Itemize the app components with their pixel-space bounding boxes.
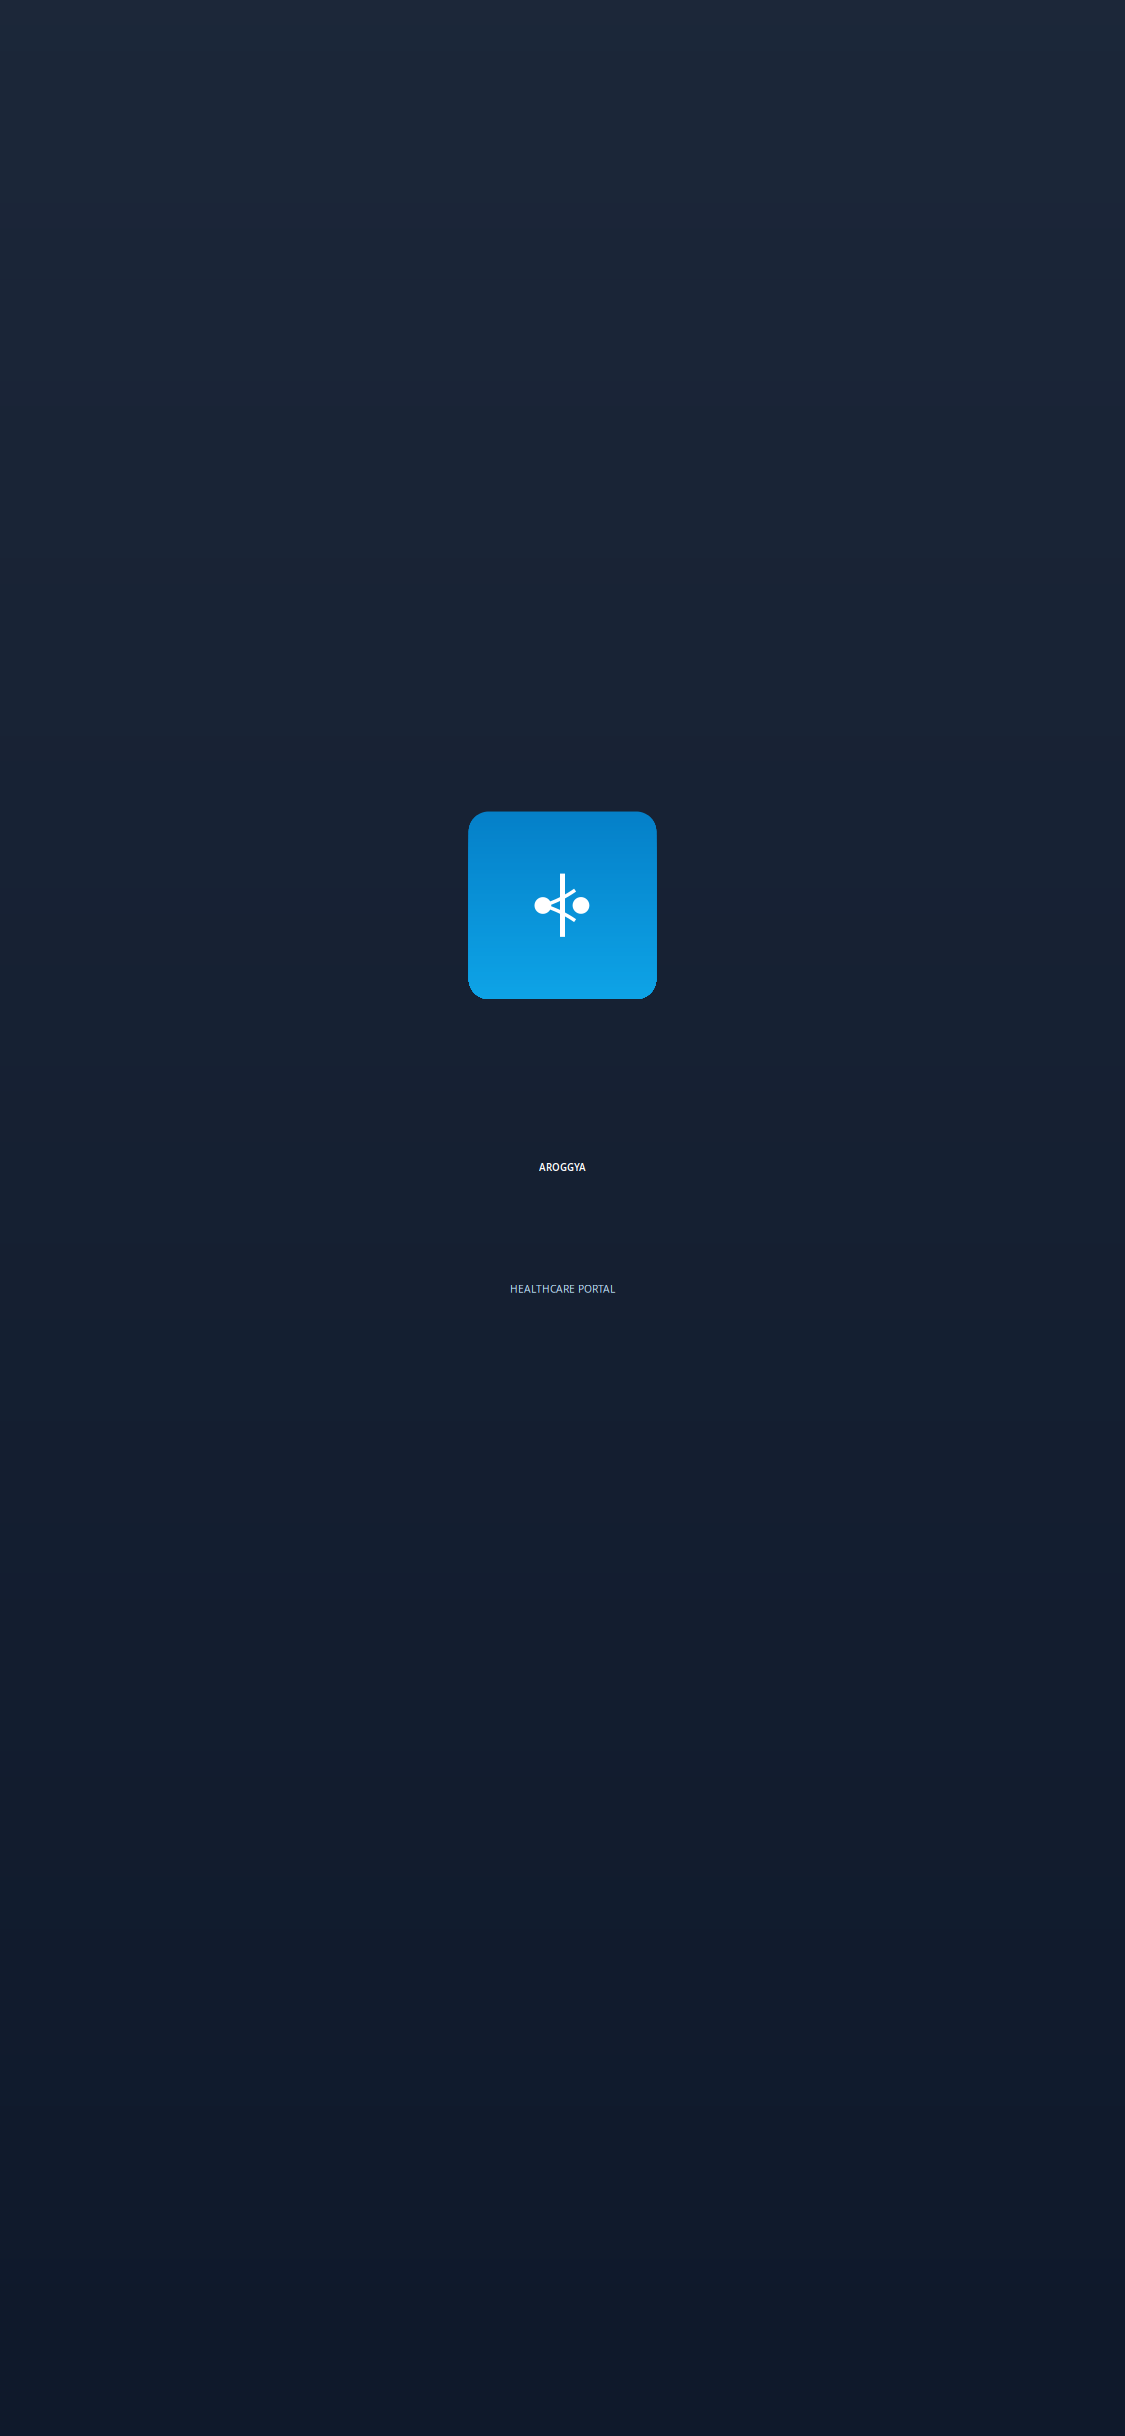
staticText: HEALTHCARE PORTAL bbox=[510, 1282, 615, 1296]
staticText: AROGGYA bbox=[539, 1160, 586, 1174]
